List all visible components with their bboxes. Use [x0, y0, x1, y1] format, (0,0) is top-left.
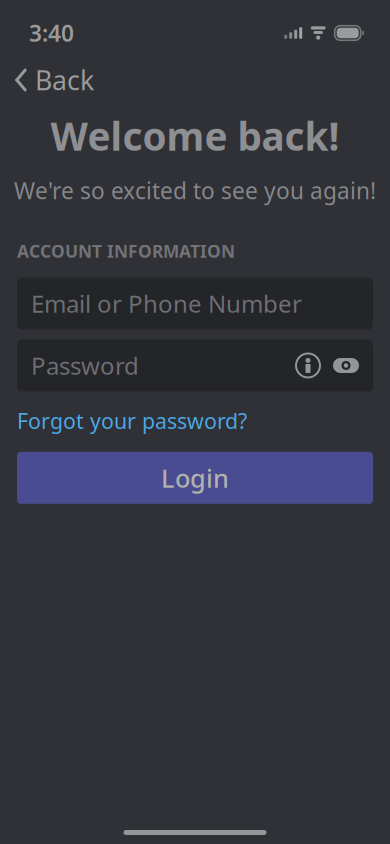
- button[interactable]: Email or Phone Number: [17, 277, 373, 329]
- staticText: Login: [161, 461, 229, 495]
- staticText: Forgot your password?: [17, 406, 247, 435]
- staticText: 3:40: [29, 18, 74, 48]
- button[interactable]: Back: [0, 56, 104, 104]
- staticText: Password: [31, 349, 139, 381]
- button[interactable]: Login: [17, 452, 373, 504]
- button[interactable]: Show password: [326, 351, 373, 380]
- staticText: Back: [35, 62, 94, 98]
- button[interactable]: Passwords: [290, 346, 326, 384]
- staticText: ACCOUNT INFORMATION: [17, 239, 235, 262]
- button[interactable]: Forgot your password?: [17, 397, 255, 444]
- staticText: Email or Phone Number: [31, 287, 302, 319]
- staticText: Welcome back!: [50, 110, 339, 161]
- staticText: We're so excited to see you again!: [14, 175, 376, 205]
